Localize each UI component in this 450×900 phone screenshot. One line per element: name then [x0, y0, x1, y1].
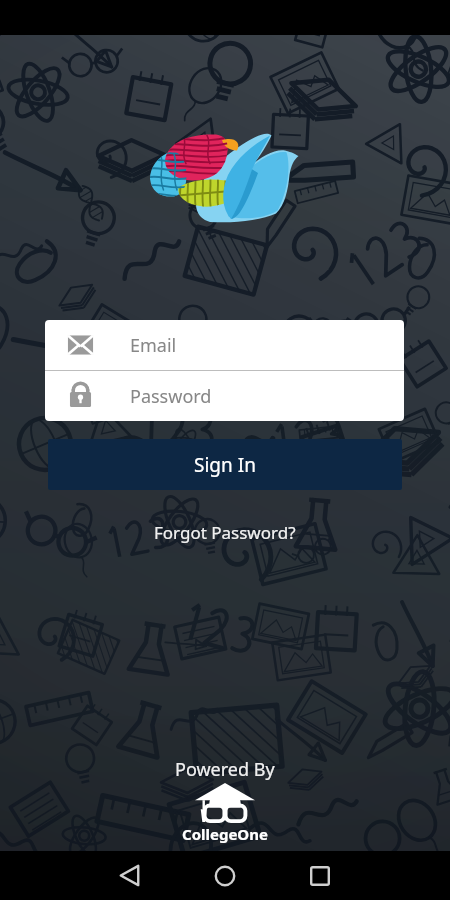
- button[interactable]: Email: [45, 320, 404, 370]
- button[interactable]: Back: [99, 851, 159, 900]
- button[interactable]: Home: [195, 851, 255, 900]
- button[interactable]: Forgot Password?: [144, 516, 306, 549]
- other: App logo: [150, 126, 300, 220]
- button[interactable]: Password: [45, 371, 404, 421]
- staticText: CollegeOne: [182, 824, 268, 844]
- button[interactable]: Recents: [290, 851, 350, 900]
- staticText: Email: [130, 333, 177, 358]
- staticText: Sign In: [194, 452, 256, 478]
- staticText: Password: [130, 384, 212, 409]
- staticText: Forgot Password?: [154, 521, 296, 544]
- button[interactable]: Sign In: [48, 439, 402, 490]
- staticText: Powered By: [175, 757, 275, 782]
